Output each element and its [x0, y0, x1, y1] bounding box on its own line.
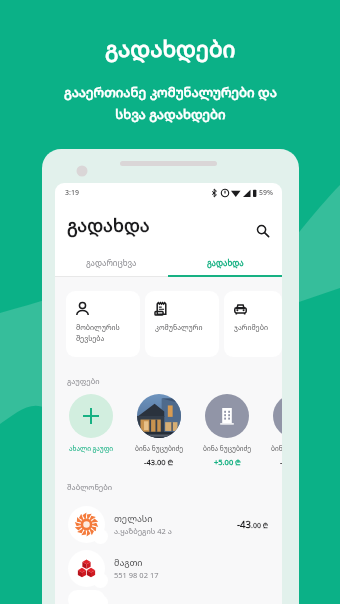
staticText: გადახდები — [105, 33, 236, 64]
staticText: ჯარიმები — [234, 323, 268, 333]
staticText: 551 98 02 17 — [114, 570, 159, 580]
button[interactable]: ბინა ნუცუბიძე — [137, 394, 181, 468]
staticText: 59% — [259, 188, 273, 198]
staticText: 3:19 — [65, 188, 79, 198]
button[interactable]: კომუნალური — [145, 291, 219, 357]
staticText: გადახდა — [207, 257, 244, 268]
staticText: კომუნალური — [155, 323, 203, 333]
staticText: შაბლონები — [67, 482, 113, 492]
staticText: ახალი გაუფი — [69, 444, 113, 453]
staticText: +5.00 ₾ — [214, 457, 241, 467]
staticText: .00 ₾ — [251, 521, 269, 531]
button[interactable]: ბინა ნუცუბიძე — [273, 394, 282, 468]
staticText: -43.00 ₾ — [144, 457, 174, 467]
staticText: -43 — [237, 518, 251, 531]
staticText: გააერთიანე კომუნალურები და სხვა გადახდებ… — [64, 83, 277, 123]
staticText: მაგთი — [114, 556, 143, 568]
button[interactable]: თელასი — [55, 502, 282, 546]
button[interactable]: მაგთი — [55, 546, 282, 590]
staticText: ბინა ნუცუბიძე — [135, 444, 184, 453]
staticText: მობილურის შევსება — [76, 323, 120, 343]
button[interactable]: გადარიცხვა — [55, 247, 168, 277]
staticText: თელასი — [114, 512, 153, 524]
staticText: ბინა ნუცუბიძე — [203, 444, 252, 453]
button[interactable]: მობილურის შევსება — [66, 291, 140, 357]
button[interactable]: ჯარიმები — [224, 291, 282, 357]
button[interactable]: გადახდა — [168, 247, 282, 277]
staticText: გაუფები — [67, 376, 100, 386]
staticText: გადარიცხვა — [86, 257, 137, 268]
button[interactable]: ახალი გაუფი — [69, 394, 113, 453]
staticText: -12.00 ₾ — [280, 457, 282, 467]
staticText: ბინა ნუცუბიძე — [271, 444, 282, 453]
staticText: ა.ყაზბეგის 42 ა — [114, 526, 172, 536]
button[interactable]: ბინა ნუცუბიძე — [205, 394, 249, 468]
button[interactable]: Search — [252, 220, 274, 242]
staticText: გადახდა — [67, 213, 150, 237]
